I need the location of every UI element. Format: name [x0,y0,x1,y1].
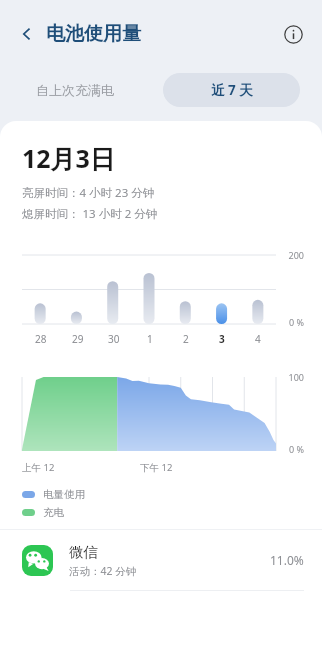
staticText: 上午 12 [22,461,55,474]
staticText: 近 7 天 [211,81,253,99]
staticText: 2 [183,332,189,346]
staticText: 12月3日 [22,141,115,175]
staticText: 自上次充满电 [36,82,114,98]
staticText: 充电 [43,506,64,519]
staticText: 28 [35,332,47,346]
staticText: 0 % [0,443,304,455]
staticText: 1 [147,332,153,346]
staticText: 0 % [0,316,304,328]
staticText: 11.0% [270,552,304,568]
staticText: 电量使用 [43,488,85,501]
button[interactable]: 微信 [0,530,322,590]
staticText: 200 [0,249,304,261]
button[interactable]: Back [10,17,44,51]
staticText: 熄屏时间： 13 小时 2 分钟 [22,206,158,222]
staticText: 亮屏时间：4 小时 23 分钟 [22,185,155,201]
staticText: 电池使用量 [46,22,141,46]
staticText: 4 [255,332,261,346]
staticText: 29 [72,332,84,346]
staticText: 微信 [69,543,98,561]
button[interactable]: 自上次充满电 [22,74,128,106]
staticText: 活动：42 分钟 [69,564,137,578]
button[interactable]: Info [276,17,310,51]
staticText: 3 [219,332,225,346]
staticText: 100 [0,371,304,383]
staticText: 30 [108,332,120,346]
staticText: 下午 12 [140,461,173,474]
button[interactable]: 近 7 天 [163,73,300,107]
